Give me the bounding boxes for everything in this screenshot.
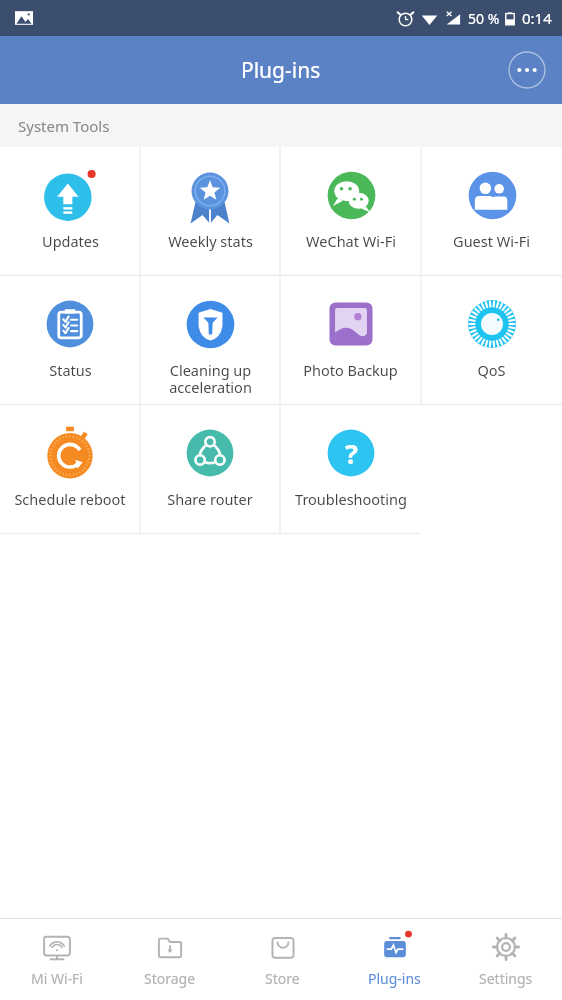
staticText: Guest Wi-Fi bbox=[453, 231, 530, 251]
staticText: Plug-ins bbox=[241, 56, 321, 85]
button[interactable]: Guest Wi-Fi bbox=[421, 147, 562, 276]
staticText: Updates bbox=[42, 231, 99, 251]
staticText: Cleaning up acceleration bbox=[169, 360, 252, 397]
button[interactable]: Cleaning up acceleration bbox=[140, 276, 280, 405]
staticText: Schedule reboot bbox=[14, 489, 126, 509]
button[interactable]: Settings bbox=[450, 919, 562, 1000]
button[interactable]: Updates bbox=[0, 147, 140, 276]
button[interactable]: ? bbox=[280, 405, 421, 534]
staticText: Mi Wi-Fi bbox=[31, 969, 83, 988]
staticText: Store bbox=[265, 969, 300, 988]
button[interactable]: QoS bbox=[421, 276, 562, 405]
button[interactable]: Storage bbox=[113, 919, 226, 1000]
button[interactable]: Share router bbox=[140, 405, 280, 534]
staticText: System Tools bbox=[18, 116, 110, 136]
staticText: Status bbox=[49, 360, 92, 380]
staticText: Weekly stats bbox=[168, 231, 253, 251]
staticText: Plug-ins bbox=[368, 969, 421, 988]
button[interactable]: Photo Backup bbox=[280, 276, 421, 405]
button[interactable]: Status bbox=[0, 276, 140, 405]
button[interactable]: Store bbox=[226, 919, 338, 1000]
button[interactable]: More options bbox=[508, 51, 546, 89]
staticText: ? bbox=[345, 435, 358, 472]
staticText: Share router bbox=[167, 489, 253, 509]
button[interactable]: Plug-ins bbox=[338, 919, 450, 1000]
staticText: Troubleshooting bbox=[295, 489, 407, 509]
staticText: WeChat Wi-Fi bbox=[306, 231, 396, 251]
staticText: Photo Backup bbox=[303, 360, 398, 380]
staticText: 0:14 bbox=[522, 8, 552, 28]
button[interactable]: WeChat Wi-Fi bbox=[280, 147, 421, 276]
staticText: QoS bbox=[477, 360, 506, 380]
staticText: Storage bbox=[144, 969, 196, 988]
button[interactable]: Schedule reboot bbox=[0, 405, 140, 534]
button[interactable]: Weekly stats bbox=[140, 147, 280, 276]
staticText: Settings bbox=[479, 969, 533, 988]
staticText: 50 % bbox=[468, 9, 500, 28]
button[interactable]: Mi Wi-Fi bbox=[0, 919, 113, 1000]
